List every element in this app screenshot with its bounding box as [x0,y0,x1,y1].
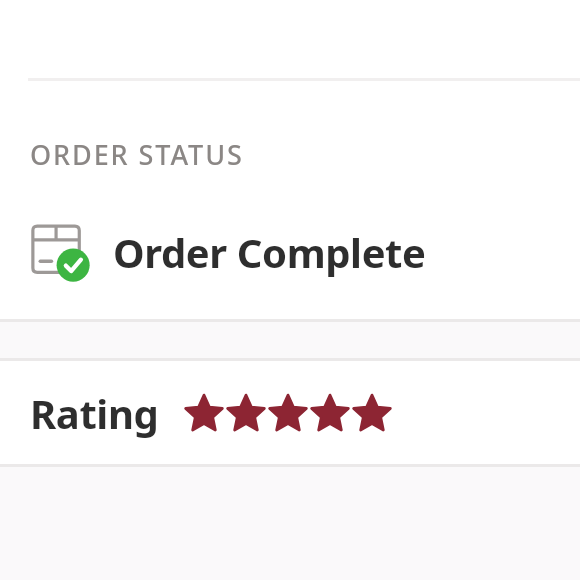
staticText: ORDER STATUS [30,136,244,173]
other: Rated 5 out of 5 stars [183,393,393,435]
other: Order complete [32,224,90,282]
staticText: Rating [30,386,159,440]
staticText: Order Complete [113,225,426,279]
button[interactable]: Rating [0,361,580,464]
button[interactable]: Order complete [0,216,580,288]
